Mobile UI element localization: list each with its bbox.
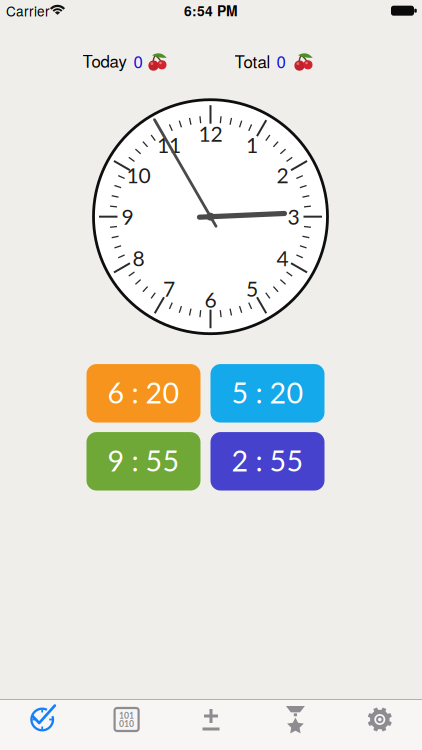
button[interactable]: 6 : 20 (86, 364, 200, 423)
staticText: 8 (133, 246, 145, 271)
staticText: Total (234, 49, 270, 73)
button[interactable]: Settings (338, 700, 422, 750)
staticText: 11 (157, 132, 181, 157)
staticText: 1 (246, 132, 258, 157)
staticText: 9 : 55 (107, 443, 179, 477)
staticText: 3 (287, 204, 299, 229)
staticText: 9 (121, 204, 133, 229)
button[interactable]: 9 : 55 (86, 432, 200, 491)
button[interactable]: Achievements (253, 700, 338, 750)
button[interactable]: Arithmetic (169, 700, 253, 750)
staticText: 2 (276, 163, 288, 188)
staticText: 6 : 20 (107, 375, 179, 409)
staticText: 6 (204, 287, 216, 312)
staticText: 2 : 55 (231, 443, 303, 477)
staticText: 6:54 PM (184, 1, 238, 20)
staticText: 5 (246, 276, 258, 301)
staticText: 4 (276, 246, 288, 271)
button[interactable]: 5 : 20 (210, 364, 324, 423)
staticText: 12 (198, 121, 222, 146)
staticText: Carrier (6, 1, 50, 20)
staticText: 7 (163, 276, 175, 301)
button[interactable]: 2 : 55 (210, 432, 324, 491)
staticText: 0 (133, 49, 142, 73)
button[interactable]: Binary (84, 700, 169, 750)
staticText: 5 : 20 (231, 375, 303, 409)
staticText: 10 (127, 163, 151, 188)
button[interactable]: Clock (0, 700, 84, 750)
staticText: 101 (119, 710, 134, 720)
staticText: 0 (276, 49, 285, 73)
staticText: Today (82, 48, 126, 73)
staticText: 010 (119, 718, 134, 729)
